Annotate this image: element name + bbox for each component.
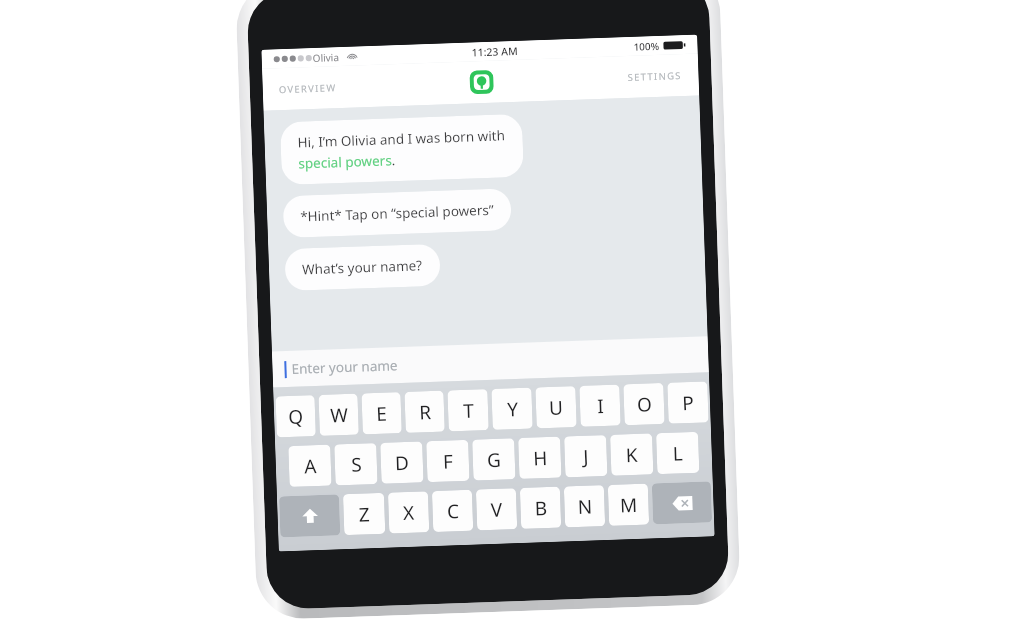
- button[interactable]: Hi, I’m Olivia and I was born with speci…: [280, 114, 524, 185]
- staticText: I: [597, 393, 604, 419]
- staticText: P: [681, 390, 694, 416]
- button[interactable]: Shift: [279, 494, 340, 537]
- button[interactable]: Backspace: [652, 481, 712, 524]
- staticText: *Hint* Tap on “special powers”: [300, 201, 494, 225]
- staticText: X: [402, 500, 415, 526]
- button[interactable]: Z: [343, 493, 385, 535]
- button[interactable]: X: [388, 491, 429, 534]
- staticText: OVERVIEW: [278, 81, 337, 96]
- button[interactable]: H: [518, 437, 561, 479]
- staticText: L: [672, 440, 683, 467]
- staticText: D: [394, 450, 409, 476]
- button[interactable]: U: [535, 386, 577, 428]
- button[interactable]: Enter your name: [272, 336, 709, 388]
- button[interactable]: Y: [491, 387, 533, 430]
- staticText: O: [636, 391, 652, 418]
- button[interactable]: What’s your name?: [284, 244, 441, 291]
- staticText: Q: [288, 403, 304, 430]
- staticText: S: [350, 451, 362, 478]
- staticText: H: [532, 445, 548, 471]
- button[interactable]: G: [472, 438, 515, 481]
- button[interactable]: S: [334, 443, 378, 485]
- staticText: W: [330, 402, 349, 429]
- staticText: What’s your name?: [302, 256, 423, 278]
- staticText: T: [463, 398, 474, 424]
- button[interactable]: A: [288, 445, 332, 487]
- staticText: J: [582, 444, 589, 470]
- button[interactable]: N: [564, 485, 605, 527]
- button[interactable]: OVERVIEW: [276, 75, 339, 102]
- staticText: 100%: [633, 39, 660, 54]
- button[interactable]: I: [579, 384, 621, 427]
- staticText: M: [619, 492, 638, 518]
- staticText: E: [376, 401, 388, 427]
- button[interactable]: P: [667, 381, 709, 424]
- staticText: G: [486, 447, 501, 473]
- staticText: U: [549, 394, 563, 421]
- staticText: N: [577, 493, 593, 520]
- staticText: Hi, I’m Olivia and I was born with speci…: [297, 126, 506, 172]
- button[interactable]: F: [426, 440, 469, 482]
- button[interactable]: SETTINGS: [625, 63, 685, 90]
- staticText: C: [446, 498, 460, 524]
- button[interactable]: T: [447, 389, 489, 431]
- button[interactable]: L: [656, 432, 699, 474]
- button[interactable]: V: [476, 488, 517, 530]
- button[interactable]: M: [608, 483, 649, 526]
- button[interactable]: E: [361, 392, 402, 434]
- staticText: Z: [358, 501, 370, 528]
- button[interactable]: C: [432, 490, 473, 532]
- button[interactable]: J: [564, 435, 607, 477]
- staticText: A: [303, 453, 317, 479]
- staticText: SETTINGS: [627, 69, 683, 84]
- button[interactable]: W: [318, 394, 359, 436]
- staticText: 11:23 AM: [471, 44, 519, 59]
- button[interactable]: D: [380, 441, 424, 484]
- button[interactable]: Q: [275, 395, 316, 437]
- staticText: Olivia: [312, 50, 340, 65]
- button[interactable]: O: [623, 383, 665, 425]
- staticText: K: [625, 442, 638, 468]
- staticText: B: [534, 495, 548, 521]
- button[interactable]: Olivia app logo: [467, 68, 496, 97]
- staticText: Enter your name: [291, 356, 399, 378]
- button[interactable]: *Hint* Tap on “special powers”: [282, 188, 512, 238]
- staticText: Y: [507, 396, 518, 422]
- staticText: V: [490, 497, 503, 523]
- button[interactable]: K: [610, 433, 653, 476]
- staticText: R: [419, 399, 432, 425]
- button[interactable]: B: [520, 487, 561, 529]
- button[interactable]: R: [404, 391, 445, 433]
- staticText: F: [442, 448, 453, 475]
